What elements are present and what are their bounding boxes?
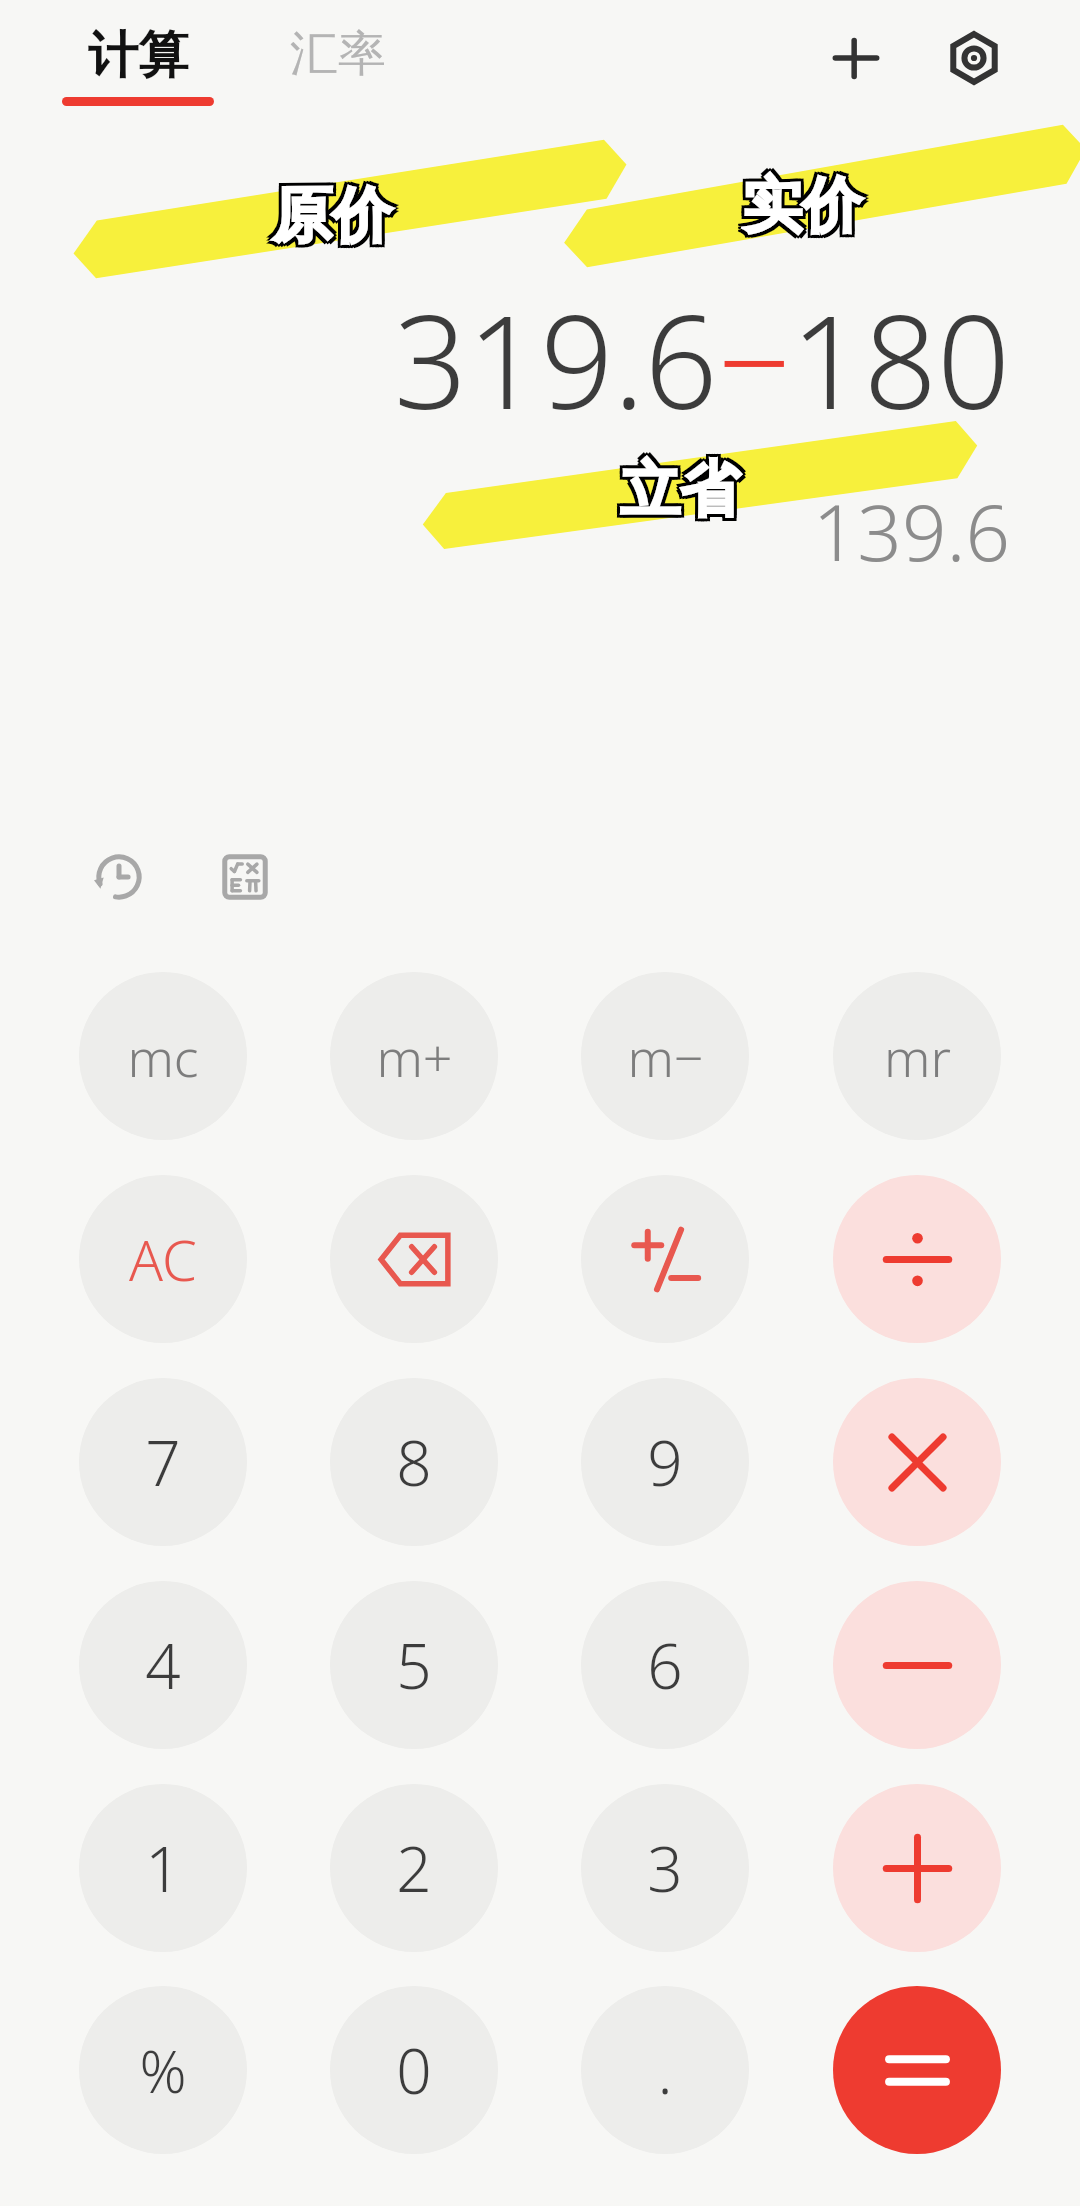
staticText: 1 [145, 1826, 181, 1910]
staticText: 立省 [623, 455, 743, 531]
button[interactable]: Plus [833, 1784, 1001, 1952]
button[interactable]: 0 [330, 1986, 498, 2154]
staticText: . [657, 2028, 673, 2112]
button[interactable]: Divide [833, 1175, 1001, 1343]
staticText: 原价 [272, 181, 392, 257]
staticText: 原价 [269, 175, 389, 251]
button[interactable]: m− [581, 972, 749, 1140]
staticText: 立省 [620, 449, 740, 525]
staticText: 实价 [739, 171, 859, 247]
staticText: 立省 [617, 449, 737, 525]
button[interactable]: Collapse [812, 14, 900, 102]
button[interactable]: AC [79, 1175, 247, 1343]
button[interactable]: 7 [79, 1378, 247, 1546]
staticText: 立省 [617, 452, 737, 528]
staticText: 4 [145, 1623, 181, 1707]
button[interactable]: mc [79, 972, 247, 1140]
button[interactable]: . [581, 1986, 749, 2154]
button[interactable]: 5 [330, 1581, 498, 1749]
staticText: mr [884, 1021, 951, 1092]
button[interactable]: m+ [330, 972, 498, 1140]
button[interactable]: Backspace [330, 1175, 498, 1343]
staticText: 实价 [739, 168, 859, 244]
staticText: 原价 [272, 178, 392, 254]
staticText: AC [129, 1221, 197, 1297]
staticText: 实价 [742, 165, 862, 241]
staticText: 3 [647, 1826, 683, 1910]
button[interactable]: 1 [79, 1784, 247, 1952]
staticText: m+ [376, 1021, 453, 1092]
button[interactable]: Plus minus [581, 1175, 749, 1343]
staticText: 0 [396, 2028, 432, 2112]
staticText: % [139, 2031, 187, 2110]
button[interactable]: 计算 [52, 18, 224, 112]
button[interactable]: 8 [330, 1378, 498, 1546]
staticText: 立省 [623, 449, 743, 525]
staticText: 原价 [275, 181, 395, 257]
staticText: 5 [396, 1623, 432, 1707]
button[interactable]: 汇率 [280, 18, 396, 90]
button[interactable]: Settings [930, 14, 1018, 102]
staticText: mc [127, 1021, 199, 1092]
button[interactable]: 4 [79, 1581, 247, 1749]
staticText: 实价 [739, 165, 859, 241]
staticText: 汇率 [290, 24, 386, 84]
button[interactable]: Multiply [833, 1378, 1001, 1546]
staticText: 立省 [617, 455, 737, 531]
button[interactable]: Minus [833, 1581, 1001, 1749]
button[interactable]: % [79, 1986, 247, 2154]
staticText: 7 [145, 1420, 181, 1504]
staticText: 319.6−180 [394, 272, 1010, 446]
staticText: 实价 [742, 171, 862, 247]
staticText: 实价 [745, 168, 865, 244]
staticText: 原价 [269, 178, 389, 254]
staticText: 6 [647, 1623, 683, 1707]
staticText: 139.6 [812, 478, 1010, 584]
button[interactable]: 6 [581, 1581, 749, 1749]
staticText: 实价 [745, 171, 865, 247]
staticText: m− [627, 1021, 704, 1092]
staticText: 实价 [742, 168, 862, 244]
staticText: 8 [396, 1420, 432, 1504]
button[interactable]: 2 [330, 1784, 498, 1952]
staticText: 原价 [275, 178, 395, 254]
staticText: 实价 [745, 165, 865, 241]
staticText: 立省 [623, 452, 743, 528]
staticText: 立省 [620, 452, 740, 528]
staticText: 9 [647, 1420, 683, 1504]
staticText: 2 [396, 1826, 432, 1910]
staticText: 计算 [88, 24, 188, 87]
button[interactable]: History [78, 836, 160, 918]
button[interactable]: Scientific [204, 836, 286, 918]
button[interactable]: 9 [581, 1378, 749, 1546]
staticText: 立省 [620, 455, 740, 531]
staticText: 原价 [272, 175, 392, 251]
staticText: 原价 [275, 175, 395, 251]
button[interactable]: Equals [833, 1986, 1001, 2154]
button[interactable]: 3 [581, 1784, 749, 1952]
staticText: 原价 [269, 181, 389, 257]
button[interactable]: mr [833, 972, 1001, 1140]
